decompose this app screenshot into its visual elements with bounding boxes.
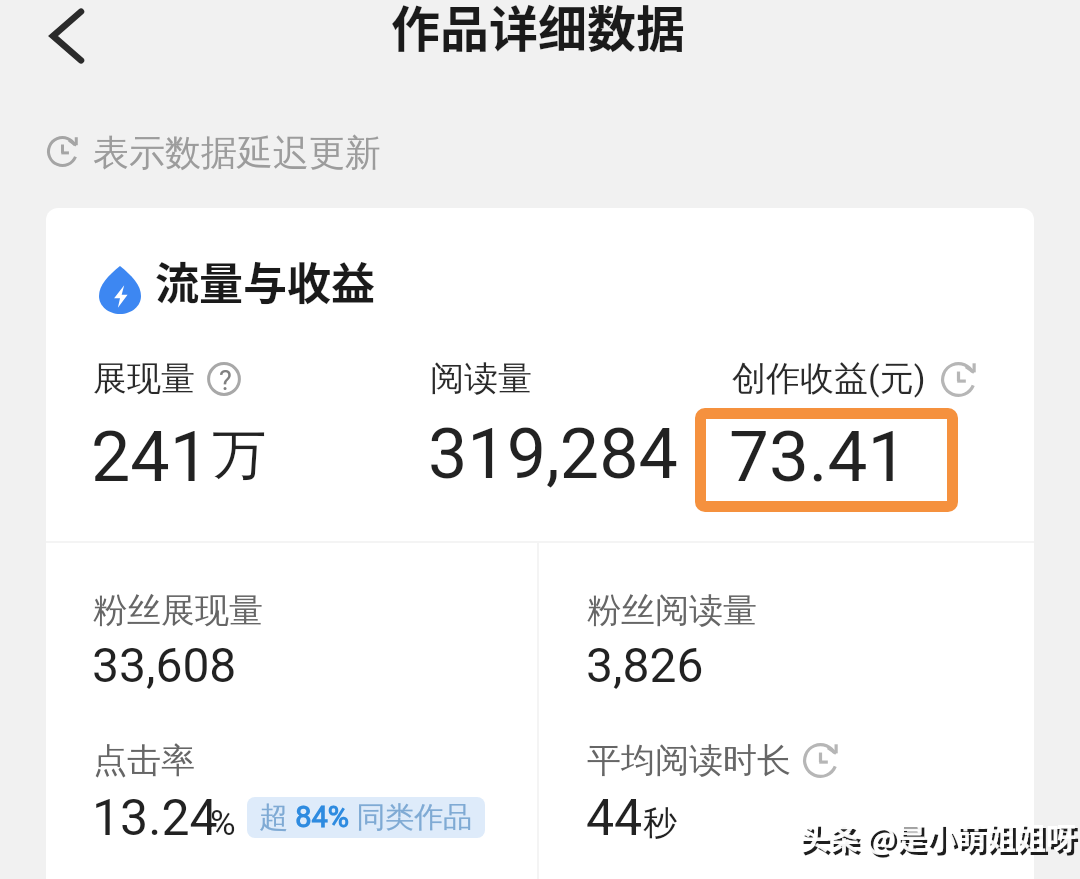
staticText: 创作收益(元): [732, 357, 926, 400]
staticText: 319,284: [428, 413, 678, 495]
button[interactable]: 展现量说明: [203, 358, 245, 400]
staticText: 作品详细数据: [391, 0, 686, 61]
staticText: 秒: [643, 802, 677, 845]
staticText: ?: [219, 365, 232, 397]
staticText: 13.24: [92, 789, 218, 848]
staticText: 44: [586, 789, 643, 848]
staticText: %: [210, 803, 236, 844]
button[interactable]: [539, 545, 1032, 690]
button[interactable]: [88, 345, 388, 495]
staticText: 粉丝阅读量: [587, 589, 757, 632]
staticText: 73.41: [729, 415, 908, 498]
button[interactable]: 平均阅读时长说明: [799, 739, 842, 782]
button[interactable]: [48, 695, 537, 845]
staticText: 点击率: [93, 739, 195, 782]
staticText: 流量与收益: [155, 249, 375, 313]
staticText: 3,826: [586, 637, 704, 693]
button[interactable]: Back: [31, 0, 103, 72]
button[interactable]: 收益数据延迟更新: [937, 358, 980, 401]
button[interactable]: [695, 345, 985, 515]
button[interactable]: [425, 345, 685, 495]
staticText: 33,608: [92, 637, 237, 693]
staticText: 万: [212, 421, 266, 489]
staticText: 241: [91, 416, 210, 498]
staticText: 展现量: [93, 357, 195, 400]
staticText: 头条 @是小萌姐姐呀: [799, 814, 1077, 857]
button[interactable]: [539, 695, 1032, 845]
staticText: 平均阅读时长: [587, 739, 791, 782]
staticText: 超 84% 同类作品: [259, 799, 473, 836]
staticText: 表示数据延迟更新: [93, 130, 381, 175]
staticText: 粉丝展现量: [93, 589, 263, 632]
staticText: 阅读量: [430, 357, 532, 400]
staticText: 头条 @是小萌姐姐呀: [802, 817, 1080, 860]
button[interactable]: [48, 545, 537, 690]
